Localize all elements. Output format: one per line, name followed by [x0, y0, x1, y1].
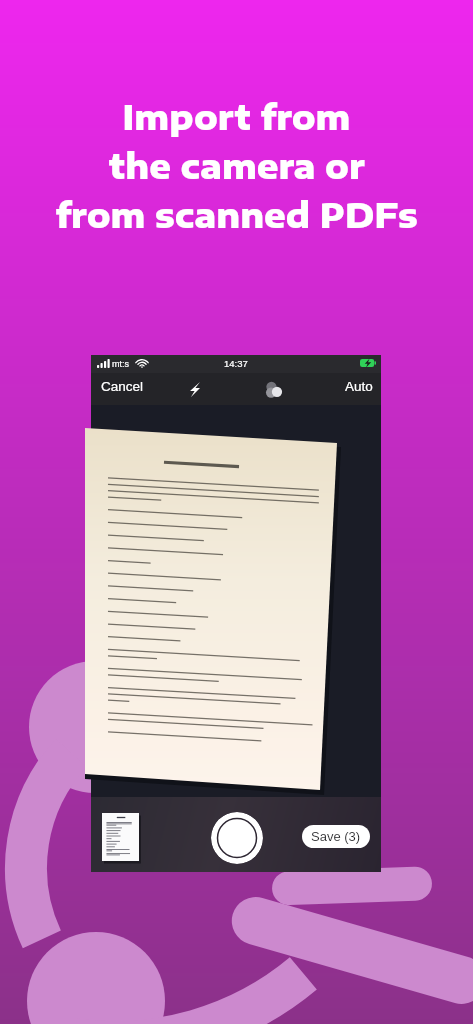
button[interactable]: Take photo [211, 812, 263, 864]
button[interactable]: Filters [263, 378, 285, 400]
staticText: Auto [345, 379, 373, 394]
button[interactable]: Cancel [101, 377, 144, 396]
staticText: Import from the camera or from scanned P… [55, 90, 418, 237]
staticText: Cancel [101, 379, 144, 394]
button[interactable]: Save (3) [302, 825, 370, 848]
staticText: 14:37 [224, 358, 248, 369]
button[interactable]: Flash [184, 378, 206, 400]
staticText: Save (3) [311, 829, 361, 844]
button[interactable]: Last scan [102, 813, 139, 861]
staticText: mt:s [112, 359, 129, 369]
button[interactable]: Auto [345, 377, 373, 396]
